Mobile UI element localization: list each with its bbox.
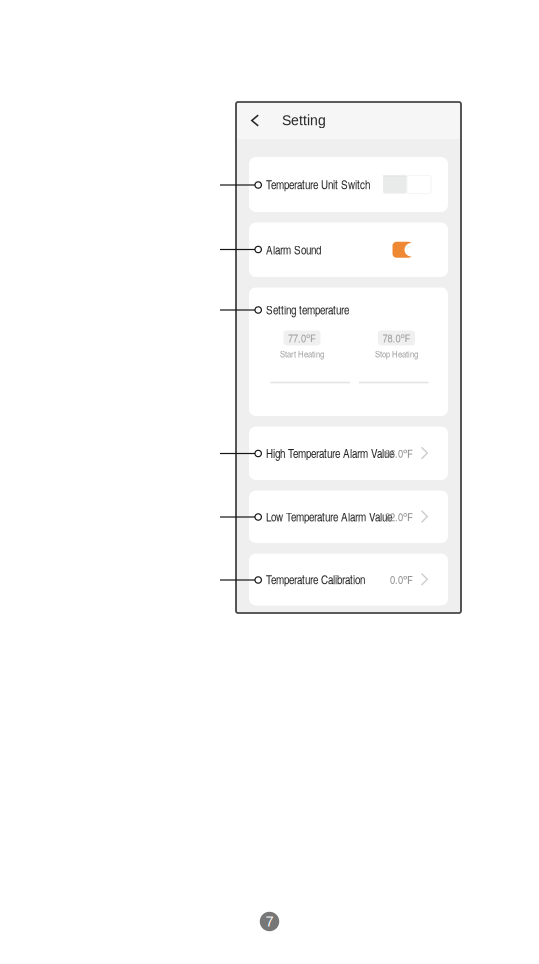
button[interactable]: Temperature Unit Switch (249, 157, 448, 212)
staticText: Stop Heating (375, 347, 418, 360)
button[interactable]: Temperature Calibration (249, 553, 448, 605)
button[interactable]: Low Temperature Alarm Value (249, 490, 448, 543)
staticText: 7 (265, 913, 273, 930)
staticText: Setting temperature (266, 301, 349, 318)
button[interactable]: Alarm Sound (249, 222, 448, 277)
staticText: Setting (282, 113, 326, 128)
staticText: High Temperature Alarm Value (266, 445, 394, 461)
staticText: Temperature Unit Switch (266, 176, 370, 193)
button[interactable]: High Temperature Alarm Value (249, 426, 448, 480)
button[interactable]: Back (244, 102, 266, 139)
staticText: 32.0℉ (385, 509, 413, 525)
staticText: 0.0℉ (390, 572, 413, 587)
staticText: 86.0℉ (385, 445, 413, 461)
staticText: 78.0℉ (382, 330, 410, 346)
staticText: 77.0℉ (288, 330, 316, 346)
staticText: Alarm Sound (266, 241, 321, 258)
staticText: Start Heating (280, 347, 324, 360)
staticText: Low Temperature Alarm Value (266, 508, 392, 525)
staticText: Temperature Calibration (266, 571, 365, 588)
